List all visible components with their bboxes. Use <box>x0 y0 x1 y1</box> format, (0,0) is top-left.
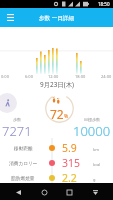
staticText: 歩数 一日詳細 <box>39 14 75 22</box>
staticText: % <box>64 113 69 120</box>
staticText: 9月23日(木) <box>40 80 74 89</box>
staticText: 6:00 <box>25 74 33 79</box>
staticText: 12:00 <box>48 74 59 79</box>
staticText: 移動距離 <box>14 145 33 151</box>
staticText: 目標歩数 <box>84 117 100 122</box>
button[interactable]: Menu <box>3 10 17 24</box>
button[interactable]: 消費カロリー <box>0 155 113 170</box>
staticText: 18:50 <box>98 1 110 7</box>
staticText: 脂肪燃焼量 <box>11 175 35 181</box>
button[interactable]: 移動距離 <box>0 140 113 155</box>
button[interactable]: Recents <box>62 185 76 199</box>
button[interactable]: Back <box>11 185 25 199</box>
staticText: 18:00 <box>75 74 86 79</box>
staticText: 7271 <box>2 122 32 140</box>
staticText: 5.9 <box>62 141 77 155</box>
staticText: km <box>93 147 99 152</box>
staticText: 消費カロリー <box>9 160 38 166</box>
button[interactable]: 脂肪燃焼量 <box>0 170 113 185</box>
staticText: 歩数 <box>13 117 21 122</box>
staticText: 10000 <box>73 122 111 140</box>
staticText: 315 <box>62 156 81 170</box>
staticText: kcal <box>93 162 101 167</box>
staticText: 72 <box>50 106 64 122</box>
button[interactable]: Hide keyboard <box>88 185 102 199</box>
staticText: 2.2 <box>62 171 77 185</box>
staticText: g <box>93 177 96 182</box>
staticText: 0:00 <box>1 74 9 79</box>
button[interactable]: Home <box>37 185 51 199</box>
staticText: 24:00 <box>101 74 112 79</box>
